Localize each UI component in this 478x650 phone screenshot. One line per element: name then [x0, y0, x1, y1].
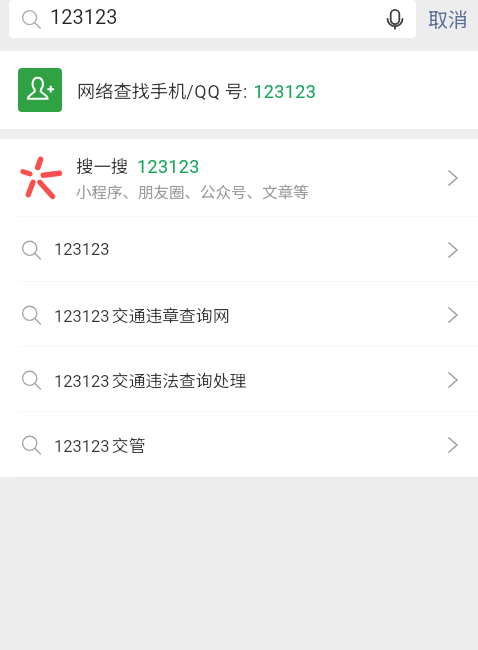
button[interactable]: 123123 交通违章查询网 [0, 282, 478, 347]
button[interactable]: 123123 [0, 217, 478, 282]
button[interactable]: Voice search [382, 6, 408, 32]
button[interactable]: 取消 [428, 0, 468, 38]
button[interactable]: 网络查找手机/QQ 号: 123123 [0, 51, 478, 129]
staticText: 搜一搜 123123 [76, 153, 200, 178]
button[interactable]: 搜一搜 123123 [0, 139, 478, 217]
staticText: 123123 交通违章查询网 [54, 303, 230, 327]
staticText: 123123 交通违法查询处理 [54, 368, 247, 392]
button[interactable]: 123123 交通违法查询处理 [0, 347, 478, 412]
staticText: 123123 [50, 5, 118, 28]
button[interactable]: 123123 [9, 0, 416, 38]
staticText: 小程序、朋友圈、公众号、文章等 [76, 180, 309, 202]
staticText: 123123 交管 [54, 433, 146, 457]
staticText: 123123 [54, 240, 110, 259]
staticText: 网络查找手机/QQ 号: 123123 [77, 77, 317, 103]
staticText: 取消 [428, 4, 468, 33]
button[interactable]: 123123 交管 [0, 412, 478, 477]
